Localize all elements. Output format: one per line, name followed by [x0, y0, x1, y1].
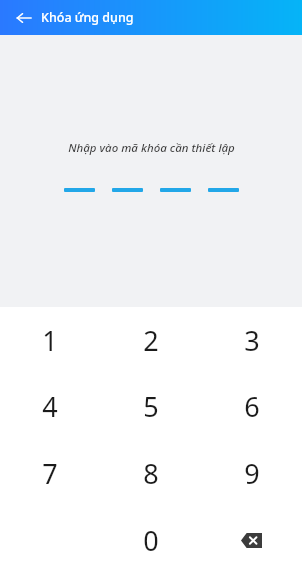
staticText: 9 — [244, 455, 260, 492]
button[interactable]: 3 — [201, 307, 302, 373]
staticText: 7 — [42, 455, 58, 492]
button[interactable]: 1 — [0, 307, 100, 373]
staticText: 8 — [143, 455, 159, 492]
button[interactable]: 7 — [0, 440, 100, 507]
staticText: 3 — [244, 322, 260, 359]
button[interactable]: 2 — [100, 307, 201, 373]
staticText: 1 — [42, 322, 58, 359]
button[interactable]: 6 — [201, 373, 302, 440]
staticText: 6 — [244, 388, 260, 425]
staticText: Nhập vào mã khóa cần thiết lập — [68, 140, 235, 156]
staticText: 4 — [42, 388, 58, 425]
button[interactable]: 8 — [100, 440, 201, 507]
staticText: Khóa ứng dụng — [41, 9, 134, 26]
button[interactable]: Backspace — [201, 507, 302, 574]
button[interactable]: 0 — [100, 507, 201, 574]
button[interactable]: 9 — [201, 440, 302, 507]
staticText: 5 — [143, 388, 159, 425]
button[interactable]: 5 — [100, 373, 201, 440]
staticText: 2 — [143, 322, 159, 359]
staticText: 0 — [143, 522, 159, 559]
button[interactable]: 4 — [0, 373, 100, 440]
button[interactable]: Back — [9, 3, 39, 33]
